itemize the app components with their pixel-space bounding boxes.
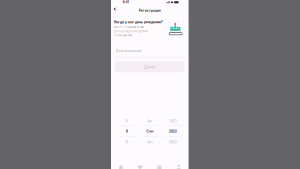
staticText: Дата рождения [115,49,141,53]
staticText: день рождения другим [114,30,148,33]
staticText: 9 [126,129,128,133]
staticText: Регистрация [139,8,161,13]
button[interactable]: Назад [112,6,121,15]
staticText: Сен [146,129,153,133]
staticText: Далее [144,65,155,69]
staticText: 8 [126,119,128,123]
staticText: 2022 [169,129,177,133]
staticText: Окт [147,140,152,144]
button[interactable]: Далее [115,62,184,72]
staticText: пользователям. [114,34,133,37]
staticText: 2021 [169,119,176,123]
button[interactable]: Избранное [131,164,150,169]
button[interactable]: Профиль [169,164,188,169]
staticText: Мы не показываем ваш [114,25,144,29]
staticText: Авг [147,119,152,123]
staticText: 9:41 [122,0,128,4]
staticText: Когда у вас день рождения? [114,20,163,24]
staticText: 10 [125,140,128,144]
button[interactable]: Главная [111,164,130,169]
staticText: 2023 [169,140,177,144]
button[interactable]: Корзина [150,164,169,169]
